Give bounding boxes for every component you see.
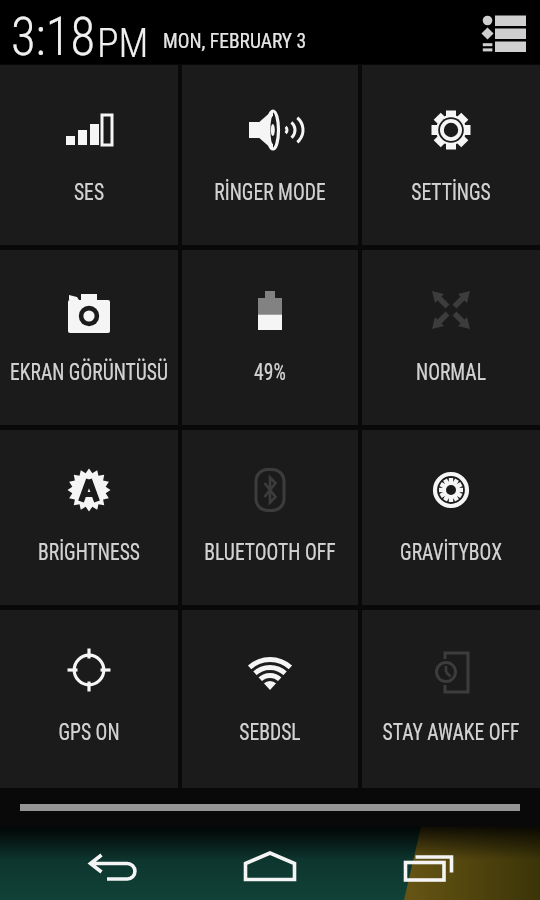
staticText: SEBDSL (161, 718, 379, 746)
staticText: BRİGHTNESS (0, 538, 198, 566)
button[interactable]: SETTİNGS (362, 65, 540, 245)
button[interactable]: SES (0, 65, 178, 245)
button[interactable]: 49% (182, 250, 358, 425)
staticText: SES (0, 178, 198, 206)
button[interactable]: GPS ON (0, 610, 178, 788)
button[interactable]: EKRAN GÖRÜNTÜSÜ (0, 250, 178, 425)
staticText: 49% (161, 358, 379, 386)
button[interactable] (371, 832, 479, 898)
staticText: GPS ON (0, 718, 198, 746)
button[interactable]: NORMAL (362, 250, 540, 425)
button[interactable] (216, 832, 324, 898)
button[interactable]: STAY AWAKE OFF (362, 610, 540, 788)
staticText: RİNGER MODE (161, 178, 379, 206)
staticText: MON, FEBRUARY 3 (163, 30, 307, 53)
button[interactable] (58, 832, 166, 898)
staticText: GRAVİTYBOX (342, 538, 540, 566)
button[interactable]: SEBDSL (182, 610, 358, 788)
staticText: NORMAL (342, 358, 540, 386)
button[interactable]: BRİGHTNESS (0, 430, 178, 605)
staticText: 3:18 (11, 6, 95, 68)
staticText: SETTİNGS (342, 178, 540, 206)
button[interactable]: GRAVİTYBOX (362, 430, 540, 605)
button[interactable] (468, 2, 536, 60)
staticText: PM (97, 20, 149, 67)
button[interactable]: BLUETOOTH OFF (182, 430, 358, 605)
staticText: EKRAN GÖRÜNTÜSÜ (0, 358, 198, 386)
button[interactable]: RİNGER MODE (182, 65, 358, 245)
staticText: STAY AWAKE OFF (342, 718, 540, 746)
staticText: BLUETOOTH OFF (161, 538, 379, 566)
